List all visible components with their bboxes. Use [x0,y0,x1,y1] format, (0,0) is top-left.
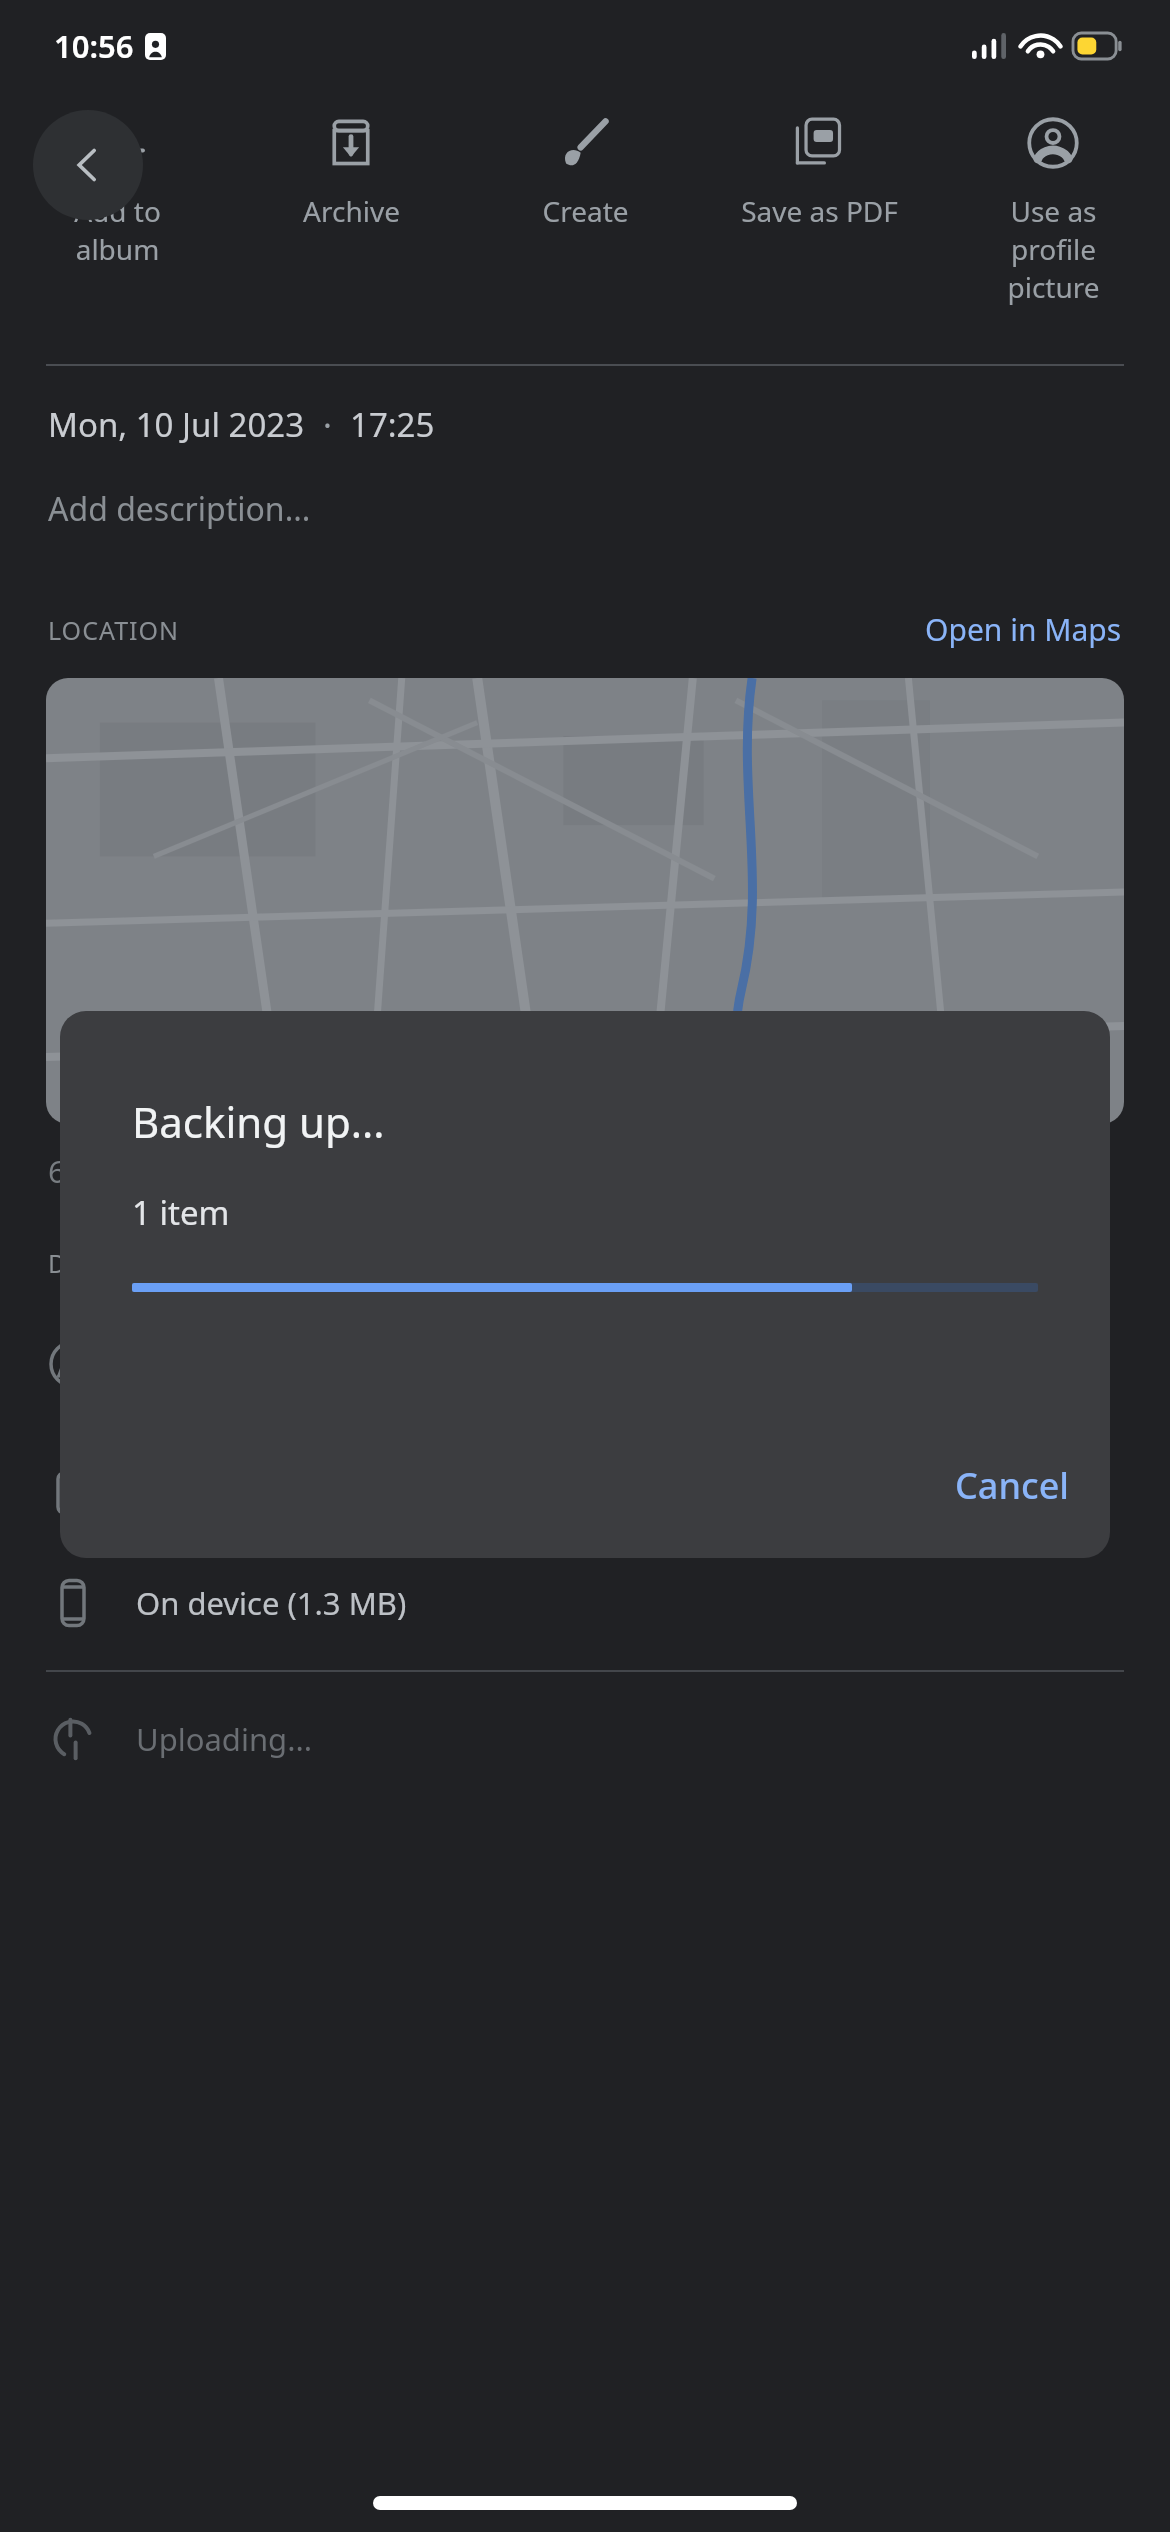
button[interactable]: Save as PDF [702,96,936,348]
staticText: · [323,402,332,447]
staticText: On device (1.3 MB) [136,1582,407,1624]
staticText: DETAILS [48,1246,151,1280]
staticText: Save as PDF [741,192,898,230]
staticText: 17:25 [350,402,435,447]
button[interactable]: Map [46,678,1124,1124]
button[interactable]: On device (1.3 MB) [0,1578,1170,1628]
button[interactable]: Uploading... [0,1714,1170,1764]
staticText: Cancel [955,1461,1070,1510]
button[interactable]: IMG_0112.HEIC [0,1447,1170,1538]
staticText: Add to album [74,192,161,268]
staticText: 10:56 [54,25,134,67]
staticText: Backing up... [132,1093,385,1150]
button[interactable]: iPhone 13 Pro [0,1318,1170,1409]
button[interactable]: Create [468,96,702,348]
staticText: LOCATION [48,613,180,647]
button[interactable]: Cancel [915,1439,1110,1532]
staticText: Archive [303,192,400,230]
staticText: 1 item [132,1190,230,1235]
button[interactable]: Add description... [0,487,1170,531]
staticText: Use as profile picture [1007,192,1100,306]
button[interactable]: Archive [234,96,468,348]
button[interactable]: Open in Maps [925,609,1122,650]
staticText: 6.517, 3.382 [48,1150,223,1192]
staticText: Create [542,192,629,230]
staticText: Uploading... [136,1718,313,1760]
staticText: Add description... [48,487,311,531]
staticText: Mon, 10 Jul 2023 [48,402,305,447]
button[interactable]: Add to album [0,96,234,348]
button[interactable]: Use as profile picture [936,96,1170,348]
button[interactable]: Back [33,110,143,220]
staticText: Open in Maps [925,609,1122,650]
